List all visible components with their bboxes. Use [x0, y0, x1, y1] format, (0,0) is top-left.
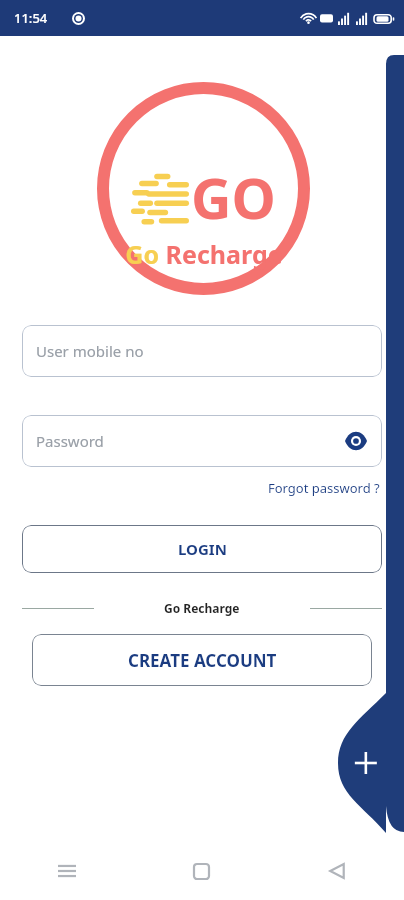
- staticText: Password: [36, 431, 104, 451]
- button[interactable]: User mobile no: [22, 325, 382, 377]
- staticText: User mobile no: [36, 341, 144, 361]
- button[interactable]: Forgot password ?: [268, 479, 380, 497]
- button[interactable]: Home: [134, 842, 269, 900]
- staticText: Go Recharge: [164, 600, 240, 616]
- button[interactable]: Show password: [340, 425, 372, 457]
- staticText: CREATE ACCOUNT: [128, 649, 277, 672]
- staticText: Go Recharge: [125, 237, 283, 271]
- button[interactable]: Password: [22, 415, 382, 467]
- button[interactable]: CREATE ACCOUNT: [32, 634, 372, 686]
- staticText: LOGIN: [178, 539, 227, 559]
- button[interactable]: Recents: [0, 842, 134, 900]
- button[interactable]: Add: [340, 733, 400, 793]
- staticText: 11:54: [14, 9, 48, 27]
- button[interactable]: LOGIN: [22, 525, 382, 573]
- staticText: GO: [191, 159, 276, 235]
- button[interactable]: Back: [269, 842, 404, 900]
